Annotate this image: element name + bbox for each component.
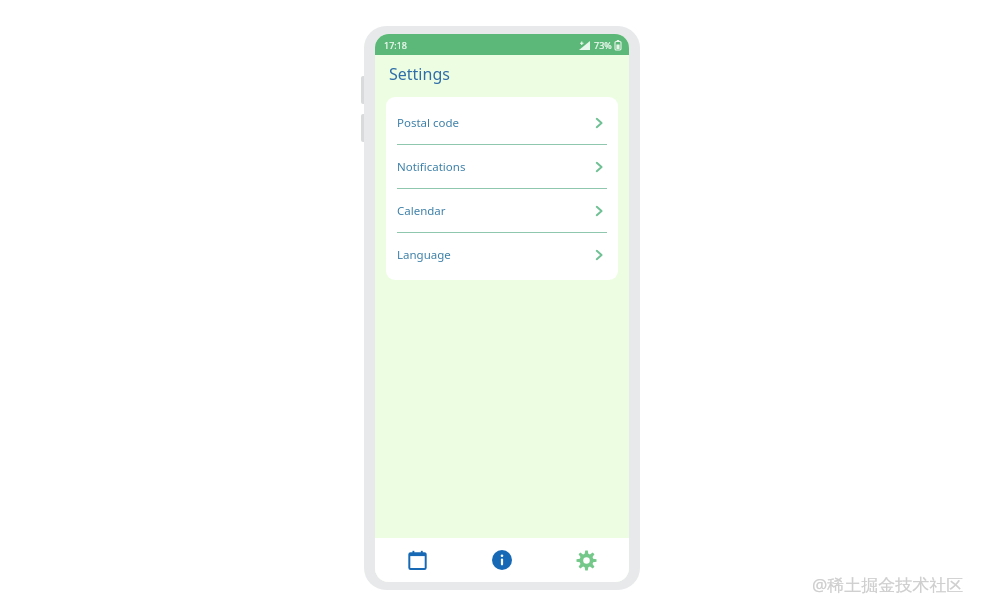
staticText: Language xyxy=(397,247,591,263)
staticText: Settings xyxy=(389,63,450,85)
button[interactable]: Settings xyxy=(544,538,629,582)
staticText: Calendar xyxy=(397,203,591,219)
staticText: 17:18 xyxy=(384,39,408,51)
button[interactable]: Postal code xyxy=(386,101,618,144)
staticText: 73% xyxy=(594,39,612,51)
button[interactable]: Calendar xyxy=(375,538,459,582)
staticText: Postal code xyxy=(397,115,591,131)
staticText: @稀土掘金技术社区 xyxy=(812,573,964,596)
button[interactable]: Calendar xyxy=(386,189,618,232)
button[interactable]: Language xyxy=(386,233,618,276)
staticText: Notifications xyxy=(397,159,591,175)
button[interactable]: Info xyxy=(459,538,544,582)
button[interactable]: Notifications xyxy=(386,145,618,188)
